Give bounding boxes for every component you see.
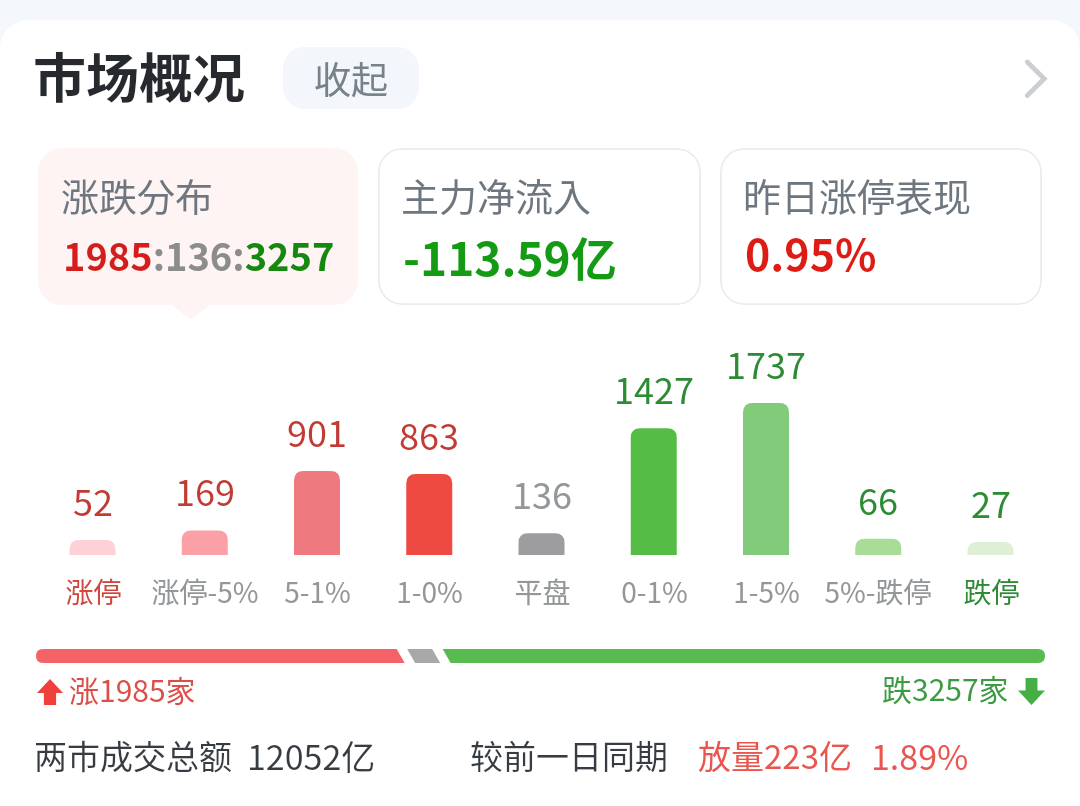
staticText: 1-5% xyxy=(733,571,800,612)
button[interactable]: 主力净流入 xyxy=(378,148,701,305)
button[interactable]: 收起 xyxy=(283,47,419,109)
button[interactable]: 涨跌分布 xyxy=(38,148,358,305)
staticText: 5-1% xyxy=(284,571,351,612)
staticText: 136 xyxy=(512,467,572,519)
staticText: 跌3257家 xyxy=(882,666,1009,709)
staticText: 放量223亿 xyxy=(698,731,852,779)
staticText: 1-0% xyxy=(396,571,463,612)
staticText: 收起 xyxy=(314,51,388,105)
button[interactable]: Open market overview xyxy=(1001,45,1065,109)
staticText: 1737 xyxy=(726,337,806,389)
staticText: 昨日涨停表现 xyxy=(743,167,972,222)
staticText: 66 xyxy=(858,473,898,525)
staticText: 1427 xyxy=(614,362,694,414)
staticText: 涨停-5% xyxy=(151,571,259,612)
staticText: 1.89% xyxy=(871,731,969,780)
staticText: 两市成交总额 xyxy=(34,731,232,779)
staticText: -113.59亿 xyxy=(403,223,617,290)
staticText: 901 xyxy=(287,405,347,457)
staticText: 0.95% xyxy=(745,221,877,283)
staticText: 市场概况 xyxy=(33,37,245,114)
staticText: 169 xyxy=(175,464,235,516)
staticText: 1985:136:3257 xyxy=(63,227,335,282)
staticText: 863 xyxy=(399,408,459,460)
button[interactable]: 昨日涨停表现 xyxy=(720,148,1042,305)
staticText: 0-1% xyxy=(621,571,688,612)
staticText: 5%-跌停 xyxy=(824,571,932,612)
staticText: 平盘 xyxy=(514,571,571,612)
staticText: 52 xyxy=(73,474,113,526)
staticText: 27 xyxy=(971,476,1011,528)
staticText: 跌停 xyxy=(963,571,1020,612)
staticText: 较前一日同期 xyxy=(470,731,668,779)
staticText: 涨1985家 xyxy=(69,667,196,710)
staticText: 涨跌分布 xyxy=(61,167,214,222)
staticText: 主力净流入 xyxy=(401,167,592,222)
staticText: 涨停 xyxy=(65,571,122,612)
staticText: 12052亿 xyxy=(247,731,376,780)
